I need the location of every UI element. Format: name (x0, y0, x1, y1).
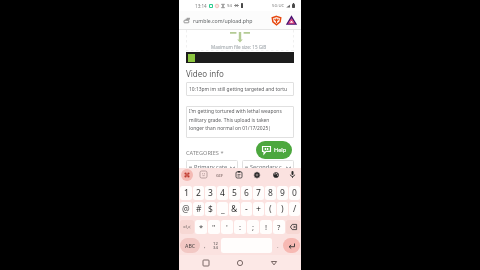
button[interactable]: 6 (241, 186, 252, 200)
staticText: 10:13pm im still getting targeted and to… (189, 86, 288, 93)
button[interactable]: 9 (277, 186, 288, 200)
button[interactable]: ABC (180, 238, 200, 253)
staticText: 2 (196, 187, 201, 199)
staticText: ( (269, 203, 272, 215)
staticText: 5G UC (272, 3, 285, 9)
staticText: 0 (292, 187, 297, 199)
button[interactable]: " (208, 220, 220, 234)
button[interactable]: 1 (180, 186, 192, 200)
button[interactable]: . (272, 238, 283, 253)
button[interactable]: ! (260, 220, 272, 234)
staticText: =\< (183, 224, 191, 231)
staticText: + (256, 203, 261, 215)
staticText: 13:14 (195, 3, 207, 9)
button[interactable]: Settings (252, 170, 261, 179)
button[interactable]: Theme (271, 170, 280, 179)
button[interactable]: : (234, 220, 246, 234)
button[interactable]: Enter (283, 238, 300, 253)
staticText: 94 (227, 3, 232, 9)
staticText: ABC (185, 242, 196, 249)
staticText: 8 (268, 187, 273, 199)
button[interactable]: Clipboard (234, 170, 243, 179)
button[interactable]: 8 (265, 186, 276, 200)
button[interactable]: / (289, 202, 300, 216)
staticText: 7 (256, 187, 261, 199)
button[interactable]: Voice input (288, 170, 297, 179)
staticText: ' (226, 222, 228, 232)
button[interactable]: , (200, 238, 210, 253)
staticText: rumble.com/upload.php (193, 17, 253, 24)
button[interactable]: 5 (229, 186, 240, 200)
button[interactable]: Gboard (181, 169, 193, 181)
button[interactable]: $ (205, 202, 216, 216)
staticText: 12 34 (213, 241, 218, 251)
button[interactable]: Home (233, 256, 247, 270)
button[interactable]: Recents (199, 256, 213, 270)
button[interactable]: Backspace (286, 220, 300, 234)
button[interactable]: Help (256, 141, 292, 159)
staticText: 6 (244, 187, 249, 199)
button[interactable]: ' (221, 220, 233, 234)
button[interactable]: GIF (216, 173, 223, 179)
staticText: , (204, 242, 206, 250)
button[interactable]: 4 (217, 186, 228, 200)
button[interactable]: 2 (193, 186, 204, 200)
button[interactable]: Warning (286, 15, 297, 26)
staticText: ! (265, 222, 268, 232)
button[interactable]: 3 (205, 186, 216, 200)
staticText: CATEGORIES * (186, 149, 224, 157)
button[interactable]: Brave shields (271, 15, 282, 26)
button[interactable]: * (195, 220, 207, 234)
staticText: _ (221, 203, 225, 215)
staticText: Video info (186, 68, 224, 79)
staticText: 1 (184, 187, 189, 199)
button[interactable]: + (253, 202, 264, 216)
button[interactable]: 0 (289, 186, 300, 200)
staticText: - (245, 203, 248, 215)
button[interactable]: =\< (180, 220, 194, 234)
staticText: " (212, 222, 216, 232)
button[interactable]: - (241, 202, 252, 216)
staticText: 4 (220, 187, 225, 199)
staticText: 9 (280, 187, 285, 199)
button[interactable]: Primary cate (186, 160, 238, 174)
button[interactable]: ; (247, 220, 259, 234)
staticText: Maximum file size: 15 GiB (211, 44, 267, 50)
staticText: Secondary c (250, 163, 282, 171)
button[interactable]: _ (217, 202, 228, 216)
staticText: Primary cate (194, 163, 228, 171)
staticText: ) (281, 203, 284, 215)
staticText: 3 (208, 187, 213, 199)
button[interactable]: Secondary c (242, 160, 294, 174)
button[interactable]: & (229, 202, 240, 216)
button[interactable]: ( (265, 202, 276, 216)
staticText: I'm getting tortured with lethal weapons… (189, 108, 282, 131)
staticText: # (196, 203, 202, 215)
staticText: * (199, 222, 204, 232)
button[interactable]: ) (277, 202, 288, 216)
button[interactable]: @ (180, 202, 192, 216)
staticText: ? (277, 222, 281, 232)
staticText: Help (274, 146, 287, 154)
staticText: & (231, 203, 238, 215)
staticText: . (277, 242, 279, 250)
staticText: @ (182, 203, 190, 215)
button[interactable]: 7 (253, 186, 264, 200)
button[interactable]: # (193, 202, 204, 216)
button[interactable]: ? (273, 220, 285, 234)
staticText: 5 (232, 187, 237, 199)
staticText: / (293, 203, 297, 215)
button[interactable]: Back (267, 256, 281, 270)
button[interactable]: Stickers (199, 170, 208, 179)
button[interactable]: Numbers (210, 238, 221, 253)
staticText: ; (252, 222, 255, 232)
staticText: : (239, 222, 242, 232)
staticText: $ (208, 203, 213, 215)
